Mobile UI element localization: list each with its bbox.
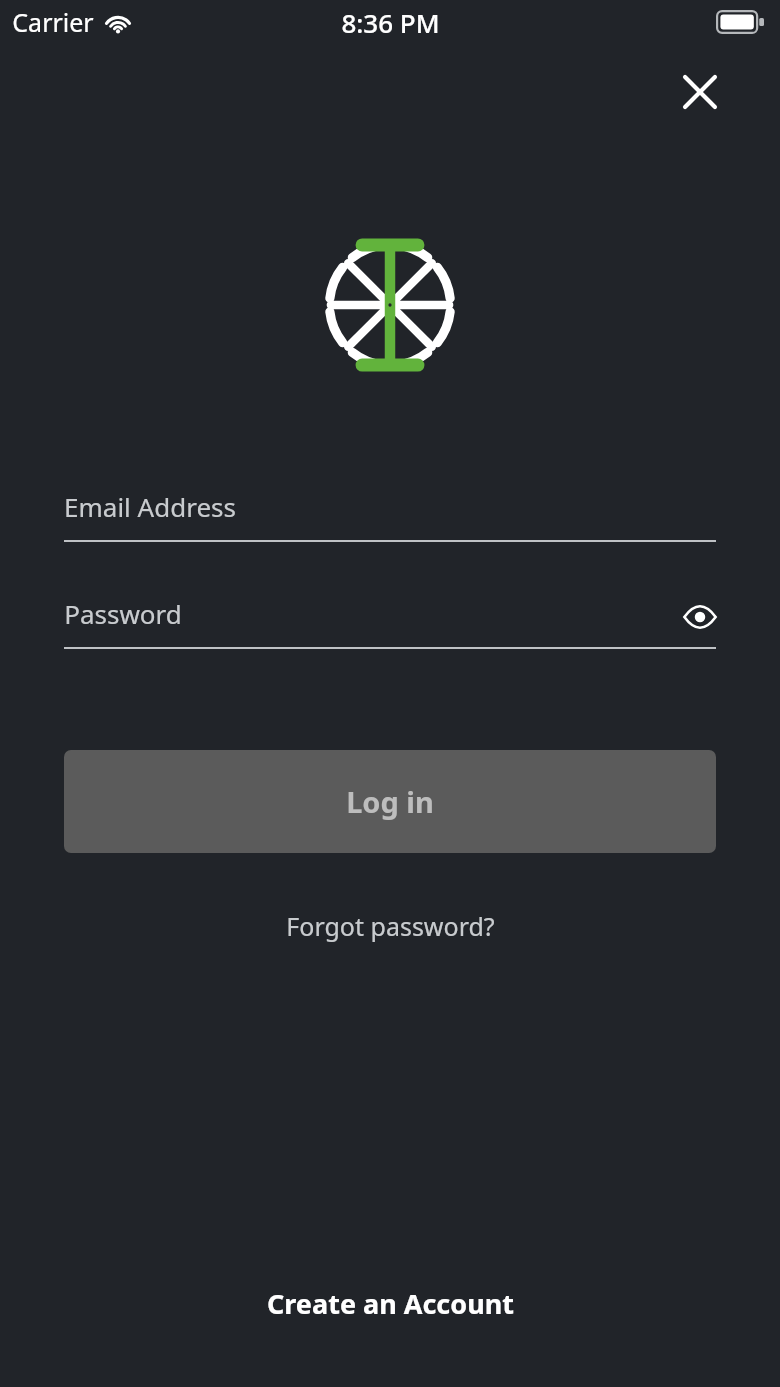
button[interactable]: Log in [64,750,716,853]
button[interactable]: Show password [672,589,728,645]
button[interactable]: Close [666,58,734,126]
button[interactable]: Create an Account [0,1275,780,1331]
staticText: 8:36 PM [341,5,440,40]
staticText: Email Address [64,489,236,524]
staticText: Forgot password? [286,909,495,943]
button[interactable]: Email Address [64,478,716,542]
staticText: Carrier [12,5,94,39]
staticText: Log in [346,782,434,821]
button[interactable]: Forgot password? [0,900,780,952]
button[interactable]: Password [64,585,716,649]
staticText: Password [64,596,182,631]
staticText: Create an Account [267,1285,514,1322]
